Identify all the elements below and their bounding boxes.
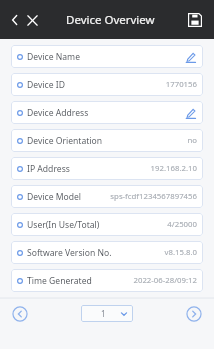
staticText: sps-fcdf1234567897456 <box>110 191 197 202</box>
staticText: Device Model <box>27 191 82 203</box>
staticText: 1 <box>101 308 106 319</box>
staticText: IP Address <box>27 163 70 175</box>
button[interactable]: Edit Device Name <box>183 50 197 64</box>
button[interactable]: Device Orientation <box>11 129 203 152</box>
button[interactable]: Device ID <box>11 73 203 96</box>
staticText: Software Version No. <box>27 247 112 259</box>
staticText: no <box>187 135 197 146</box>
staticText: Device Address <box>27 107 89 119</box>
button[interactable]: Next page <box>184 304 204 324</box>
staticText: 4/25000 <box>167 219 197 230</box>
staticText: User(In Use/Total) <box>27 219 100 231</box>
staticText: Device ID <box>27 79 65 91</box>
button[interactable]: Device Name <box>11 45 203 68</box>
button[interactable]: Edit Device Address <box>183 106 197 120</box>
staticText: 2022-06-28/09:12 <box>133 275 197 286</box>
staticText: 1770156 <box>165 79 197 90</box>
button[interactable]: Software Version No. <box>11 241 203 264</box>
staticText: Time Generated <box>27 275 92 287</box>
button[interactable]: User(In Use/Total) <box>11 213 203 236</box>
button[interactable]: IP Address <box>11 157 203 180</box>
button[interactable]: Back <box>5 10 25 30</box>
staticText: Device Orientation <box>27 135 103 147</box>
button[interactable]: Save <box>184 9 206 31</box>
staticText: Device Overview <box>66 12 155 28</box>
button[interactable]: 1 <box>81 305 133 322</box>
button[interactable]: Device Address <box>11 101 203 124</box>
button[interactable]: Device Model <box>11 185 203 208</box>
button[interactable]: Previous page <box>10 304 30 324</box>
button[interactable]: Time Generated <box>11 269 203 292</box>
button[interactable]: Close <box>21 9 43 31</box>
staticText: Device Name <box>27 51 80 63</box>
staticText: v8.15.8.0 <box>164 247 197 258</box>
staticText: 192.168.2.10 <box>150 163 197 174</box>
